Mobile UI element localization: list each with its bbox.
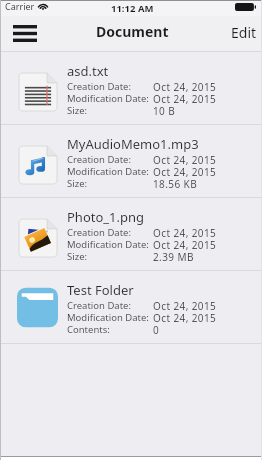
staticText: Creation Date: xyxy=(67,80,131,92)
staticText: Size: xyxy=(67,250,88,262)
staticText: 11:12 AM xyxy=(111,2,154,15)
button[interactable]: MyAudioMemo1.mp3 xyxy=(0,125,262,197)
staticText: Creation Date: xyxy=(67,153,131,165)
button[interactable]: Edit xyxy=(225,17,262,48)
staticText: Carrier xyxy=(5,0,35,12)
staticText: 18.56 KB xyxy=(153,177,198,189)
staticText: Modification Date: xyxy=(67,238,149,250)
staticText: Creation Date: xyxy=(67,299,131,311)
staticText: Contents: xyxy=(67,323,110,335)
staticText: 2.39 MB xyxy=(153,250,194,262)
button[interactable]: Test Folder xyxy=(0,271,262,343)
staticText: Photo_1.png xyxy=(67,208,145,226)
staticText: 0 xyxy=(153,323,160,335)
staticText: Creation Date: xyxy=(67,226,131,238)
staticText: asd.txt xyxy=(67,62,109,80)
staticText: Modification Date: xyxy=(67,92,149,104)
staticText: Oct 24, 2015 xyxy=(153,165,217,177)
staticText: Oct 24, 2015 xyxy=(153,299,217,311)
staticText: Document xyxy=(96,22,169,41)
staticText: Oct 24, 2015 xyxy=(153,153,217,165)
staticText: Modification Date: xyxy=(67,311,149,323)
button[interactable]: Photo_1.png xyxy=(0,198,262,270)
staticText: MyAudioMemo1.mp3 xyxy=(67,135,199,153)
button[interactable]: Menu xyxy=(8,19,38,49)
staticText: Test Folder xyxy=(67,281,134,299)
staticText: Oct 24, 2015 xyxy=(153,238,217,250)
staticText: Size: xyxy=(67,104,88,116)
staticText: Oct 24, 2015 xyxy=(153,80,217,92)
staticText: Size: xyxy=(67,177,88,189)
button[interactable]: asd.txt xyxy=(0,52,262,124)
staticText: Edit xyxy=(231,23,257,42)
staticText: Oct 24, 2015 xyxy=(153,226,217,238)
staticText: Oct 24, 2015 xyxy=(153,92,217,104)
staticText: Modification Date: xyxy=(67,165,149,177)
staticText: 10 B xyxy=(153,104,176,116)
staticText: Oct 24, 2015 xyxy=(153,311,217,323)
